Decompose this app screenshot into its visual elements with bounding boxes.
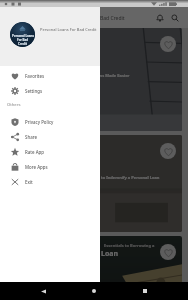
staticText: Personal Loans For Bad Credit [54,15,125,22]
button[interactable]: More Apps [0,159,100,174]
staticText: Credit [18,42,27,46]
button[interactable]: Search [167,10,182,25]
staticText: For Bad [17,38,28,42]
button[interactable]: Steps to Indemnify a Personal Loan [6,135,182,232]
staticText: Share [25,134,37,140]
button[interactable]: Add to favorites [160,244,176,260]
button[interactable]: Add to favorites [160,36,176,52]
staticText: Exit [25,179,33,185]
staticText: Personal Loans For Bad Credit [40,27,97,32]
button[interactable]: Exit [0,174,100,189]
staticText: Favorites [25,73,45,79]
staticText: Steps to Indemnify a Personal Loan [89,175,160,180]
staticText: Privacy Policy [25,119,54,125]
staticText: Personal Loans Made Easier [74,73,130,78]
button[interactable]: Essentials to Borrowing a [6,236,182,300]
button[interactable]: Notifications [152,10,167,25]
button[interactable]: App logo [10,22,35,47]
staticText: Loan [101,249,119,259]
button[interactable]: Open navigation drawer [3,10,19,26]
staticText: Essentials to Borrowing a [104,243,155,248]
staticText: Settings [25,88,43,94]
button[interactable]: Home [86,283,102,299]
button[interactable]: Personal Loans Made Easier [6,28,182,131]
button[interactable]: Add to favorites [160,143,176,159]
staticText: More Apps [25,164,48,170]
button[interactable]: Favorites [0,68,100,83]
button[interactable]: Privacy Policy [0,114,100,129]
staticText: Personal Loans [12,34,34,38]
button[interactable]: Settings [0,83,100,98]
button[interactable]: Back [35,283,51,299]
button[interactable]: Rate App [0,144,100,159]
button[interactable]: Share [0,129,100,144]
staticText: Others [7,102,21,108]
staticText: Rate App [25,149,44,155]
button[interactable]: Recent apps [137,283,153,299]
